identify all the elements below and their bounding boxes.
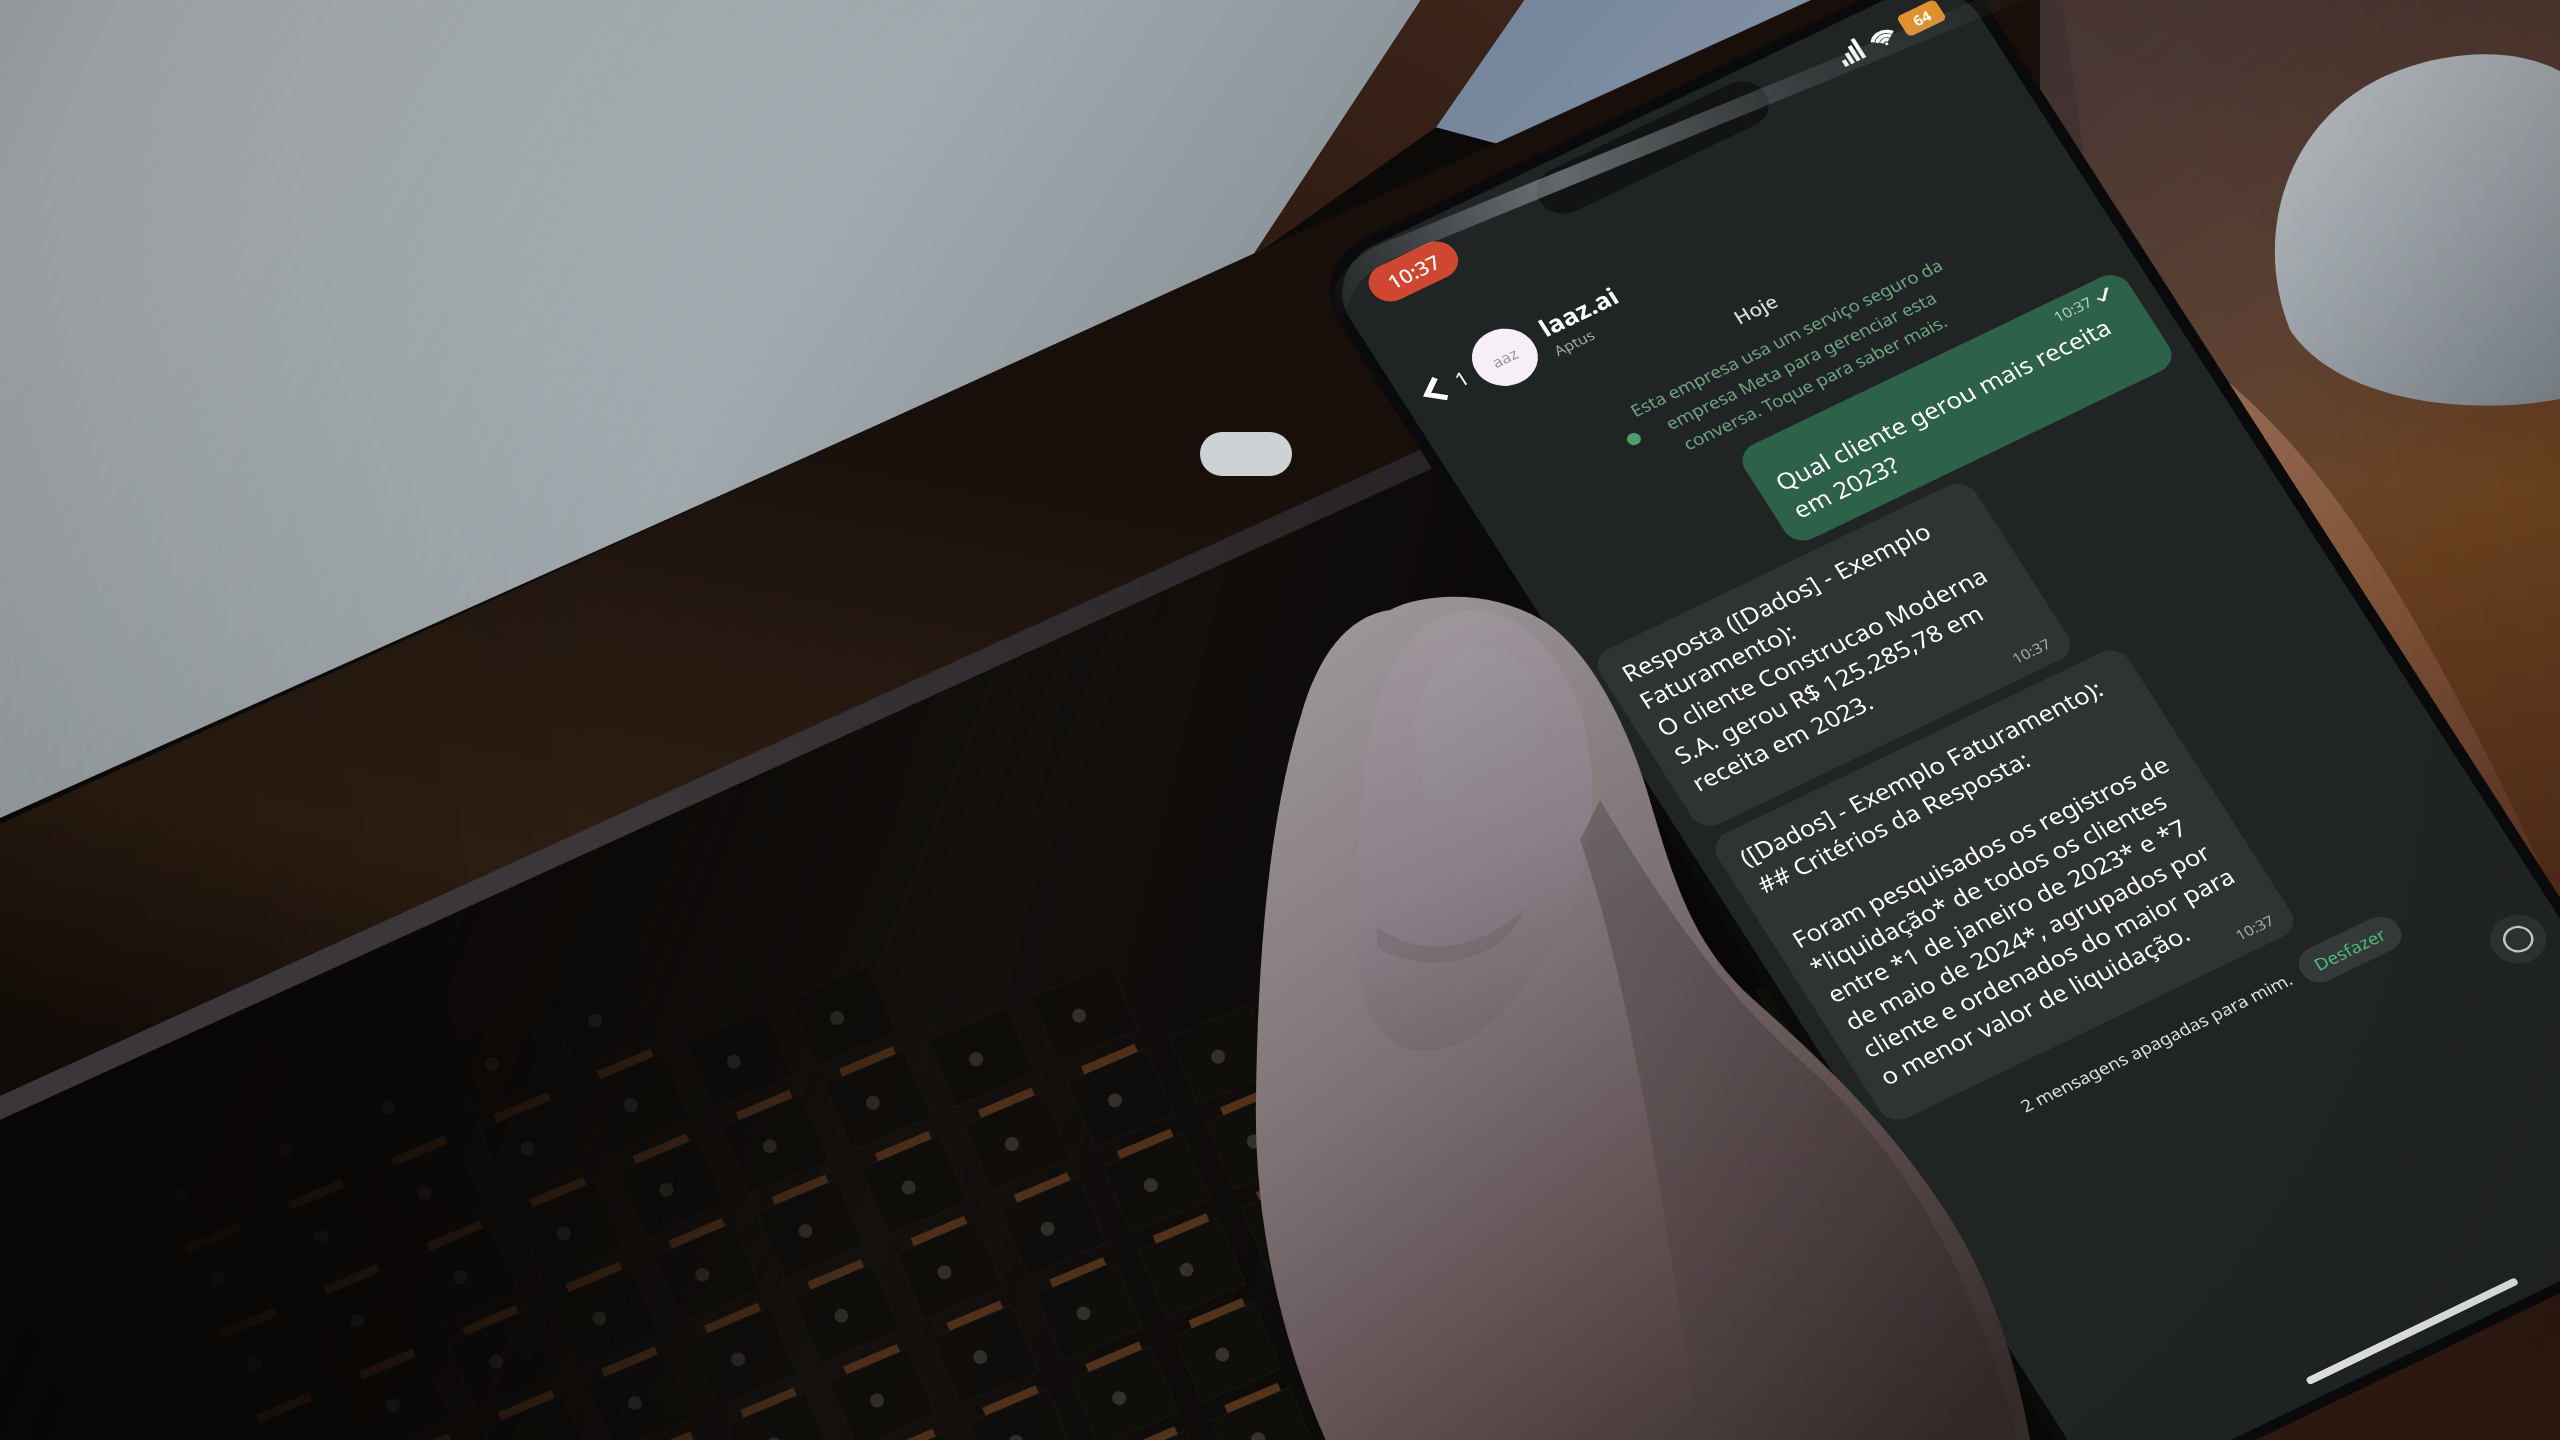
staticText: Qual cliente gerou mais receita em 2023? (1768, 302, 2153, 525)
staticText: 10:37 (2008, 634, 2055, 668)
staticText: aaz (1487, 343, 1523, 372)
staticText: Hoje (1728, 289, 1784, 330)
staticText: 10:37 (2231, 911, 2278, 945)
button[interactable]: Stickers (2480, 906, 2556, 972)
staticText: Aptus (1550, 325, 1599, 360)
staticText: 10:37 (1382, 248, 1446, 295)
staticText: laaz.ai (1532, 279, 1625, 344)
button[interactable]: Esta empresa usa um serviço seguro da em… (1473, 190, 2109, 539)
button[interactable]: Back (1402, 363, 1468, 419)
staticText: 2 mensagens apagadas para mim. (2016, 968, 2297, 1117)
button[interactable]: ([Dados] - Exemplo Faturamento): ## Crit… (1707, 644, 2301, 1126)
staticText: 1 (1449, 364, 1474, 392)
button[interactable]: Resposta ([Dados] - Exemplo Faturamento)… (1590, 477, 2078, 833)
staticText: Desfazer (2309, 923, 2391, 976)
staticText: 10:37 (2050, 292, 2096, 326)
button[interactable]: Profile photo (1460, 318, 1550, 396)
staticText: Esta empresa usa um serviço seguro da em… (1625, 254, 1976, 466)
button[interactable]: Qual cliente gerou mais receita em 2023? (1734, 268, 2179, 547)
button[interactable]: Desfazer (2291, 910, 2409, 989)
button[interactable]: laaz.ai (1532, 279, 1636, 360)
staticText: Resposta ([Dados] - Exemplo Faturamento)… (1615, 497, 2044, 798)
staticText: 64 (1909, 6, 1936, 30)
staticText: ([Dados] - Exemplo Faturamento): ## Crit… (1733, 664, 2267, 1092)
